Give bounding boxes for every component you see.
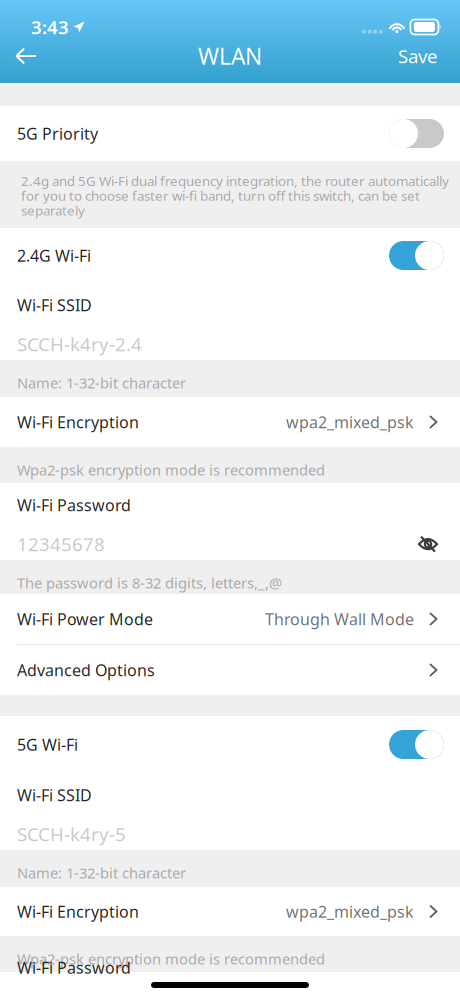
staticText: WLAN (198, 41, 262, 71)
staticText: The password is 8-32 digits, letters,_,@ (17, 573, 282, 592)
staticText: SCCH-k4ry-2.4 (17, 332, 142, 356)
staticText: Save (398, 44, 438, 68)
staticText: SCCH-k4ry-5 (17, 822, 126, 846)
button[interactable]: Turn off (389, 241, 444, 270)
staticText: Name: 1-32-bit character (17, 373, 186, 392)
button[interactable]: Turn off (389, 730, 444, 759)
staticText: Wi-Fi SSID (17, 784, 92, 806)
staticText: 12345678 (17, 532, 105, 556)
staticText: 3:43 (31, 15, 69, 39)
staticText: Wi-Fi Power Mode (17, 608, 153, 630)
button[interactable]: Wi-Fi Encryption (0, 887, 460, 936)
staticText: 5G Wi-Fi (17, 734, 78, 755)
staticText: Wpa2-psk encryption mode is recommended (17, 460, 325, 479)
staticText: Wi-Fi SSID (17, 294, 92, 316)
button[interactable]: Back (0, 45, 51, 67)
staticText: Name: 1-32-bit character (17, 863, 186, 882)
button[interactable]: Show password (418, 536, 438, 553)
staticText: Wpa2-psk encryption mode is recommended (17, 949, 325, 968)
staticText: 2.4G Wi-Fi (17, 245, 91, 266)
staticText: wpa2_mixed_psk (286, 411, 414, 433)
button[interactable]: Save (384, 45, 460, 67)
button[interactable]: Turn on (389, 119, 444, 148)
staticText: Advanced Options (17, 659, 155, 681)
button[interactable]: Wi-Fi Encryption (0, 397, 460, 447)
staticText: Through Wall Mode (265, 608, 414, 630)
staticText: Wi-Fi Password (17, 957, 131, 978)
staticText: Wi-Fi Encryption (17, 411, 139, 433)
staticText: Wi-Fi Encryption (17, 901, 139, 922)
staticText: 5G Priority (17, 123, 98, 144)
button[interactable]: Wi-Fi Power Mode (0, 594, 460, 644)
staticText: 2.4g and 5G Wi-Fi dual frequency integra… (21, 172, 449, 219)
staticText: Wi-Fi Password (17, 494, 131, 516)
staticText: wpa2_mixed_psk (286, 901, 414, 922)
button[interactable]: Advanced Options (0, 645, 460, 695)
